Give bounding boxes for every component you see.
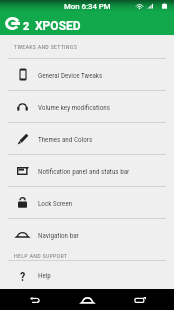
staticText: General Device Tweaks [38, 71, 103, 79]
button[interactable]: Navigation bar [0, 219, 174, 250]
button[interactable]: Home [68, 289, 106, 310]
staticText: Themes and Colors [38, 135, 93, 143]
button[interactable]: ? [0, 261, 174, 289]
button[interactable]: Notification panel and status bar [0, 155, 174, 186]
button[interactable]: Recent apps [121, 289, 159, 310]
staticText: Navigation bar [38, 231, 79, 239]
staticText: Notification panel and status bar [38, 167, 130, 175]
staticText: Help [38, 271, 51, 279]
staticText: Mon 6:34 PM [64, 2, 111, 11]
staticText: TWEAKS AND SETTINGS [14, 43, 77, 50]
button[interactable]: Themes and Colors [0, 123, 174, 154]
button[interactable]: Volume key modifications [0, 91, 174, 122]
button[interactable]: General Device Tweaks [0, 59, 174, 90]
staticText: ? [20, 270, 26, 282]
staticText: XPOSED [35, 19, 81, 33]
button[interactable]: Lock Screen [0, 187, 174, 218]
staticText: HELP AND SUPPORT [14, 252, 68, 259]
staticText: Lock Screen [38, 199, 73, 207]
staticText: Volume key modifications [38, 103, 110, 111]
staticText: 2 [23, 20, 30, 33]
button[interactable]: Back [15, 289, 53, 310]
